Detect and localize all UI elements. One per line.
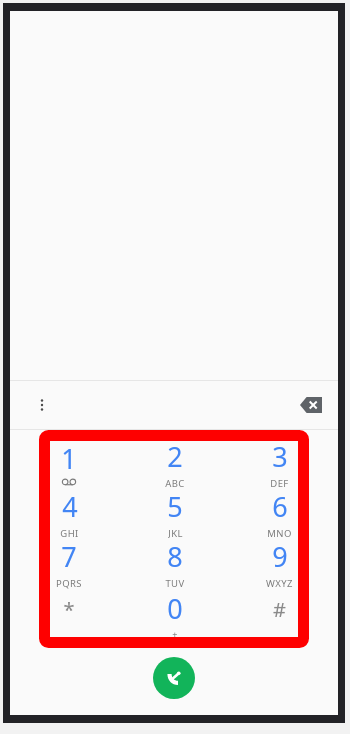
- staticText: ABC: [165, 477, 185, 488]
- staticText: MNO: [267, 527, 292, 538]
- staticText: 0: [167, 590, 183, 627]
- button[interactable]: 8: [122, 538, 227, 589]
- staticText: TUV: [165, 577, 185, 589]
- staticText: 3: [272, 438, 288, 475]
- staticText: 6: [272, 488, 288, 525]
- button[interactable]: More options: [24, 387, 60, 423]
- button[interactable]: Call: [153, 657, 195, 699]
- button[interactable]: #: [227, 589, 332, 640]
- staticText: PQRS: [56, 577, 82, 589]
- staticText: 5: [167, 488, 183, 525]
- staticText: 7: [61, 538, 77, 575]
- staticText: *: [63, 596, 75, 623]
- button[interactable]: 3: [227, 438, 332, 488]
- button[interactable]: 0: [122, 589, 227, 640]
- staticText: 9: [272, 538, 288, 575]
- staticText: 1: [61, 440, 77, 477]
- staticText: DEF: [270, 477, 289, 488]
- button[interactable]: 4: [16, 488, 122, 538]
- button[interactable]: 2: [122, 438, 227, 488]
- staticText: #: [273, 596, 286, 623]
- button[interactable]: 5: [122, 488, 227, 538]
- staticText: WXYZ: [266, 577, 293, 589]
- button[interactable]: 7: [16, 538, 122, 589]
- staticText: 8: [167, 538, 183, 575]
- button[interactable]: *: [16, 589, 122, 640]
- button[interactable]: 9: [227, 538, 332, 589]
- staticText: GHI: [60, 527, 79, 538]
- staticText: 2: [167, 438, 183, 475]
- staticText: 4: [62, 488, 78, 525]
- button[interactable]: 6: [227, 488, 332, 538]
- button[interactable]: Backspace: [294, 388, 328, 422]
- staticText: JKL: [168, 527, 183, 538]
- button[interactable]: 1: [16, 438, 122, 488]
- staticText: +: [172, 628, 178, 640]
